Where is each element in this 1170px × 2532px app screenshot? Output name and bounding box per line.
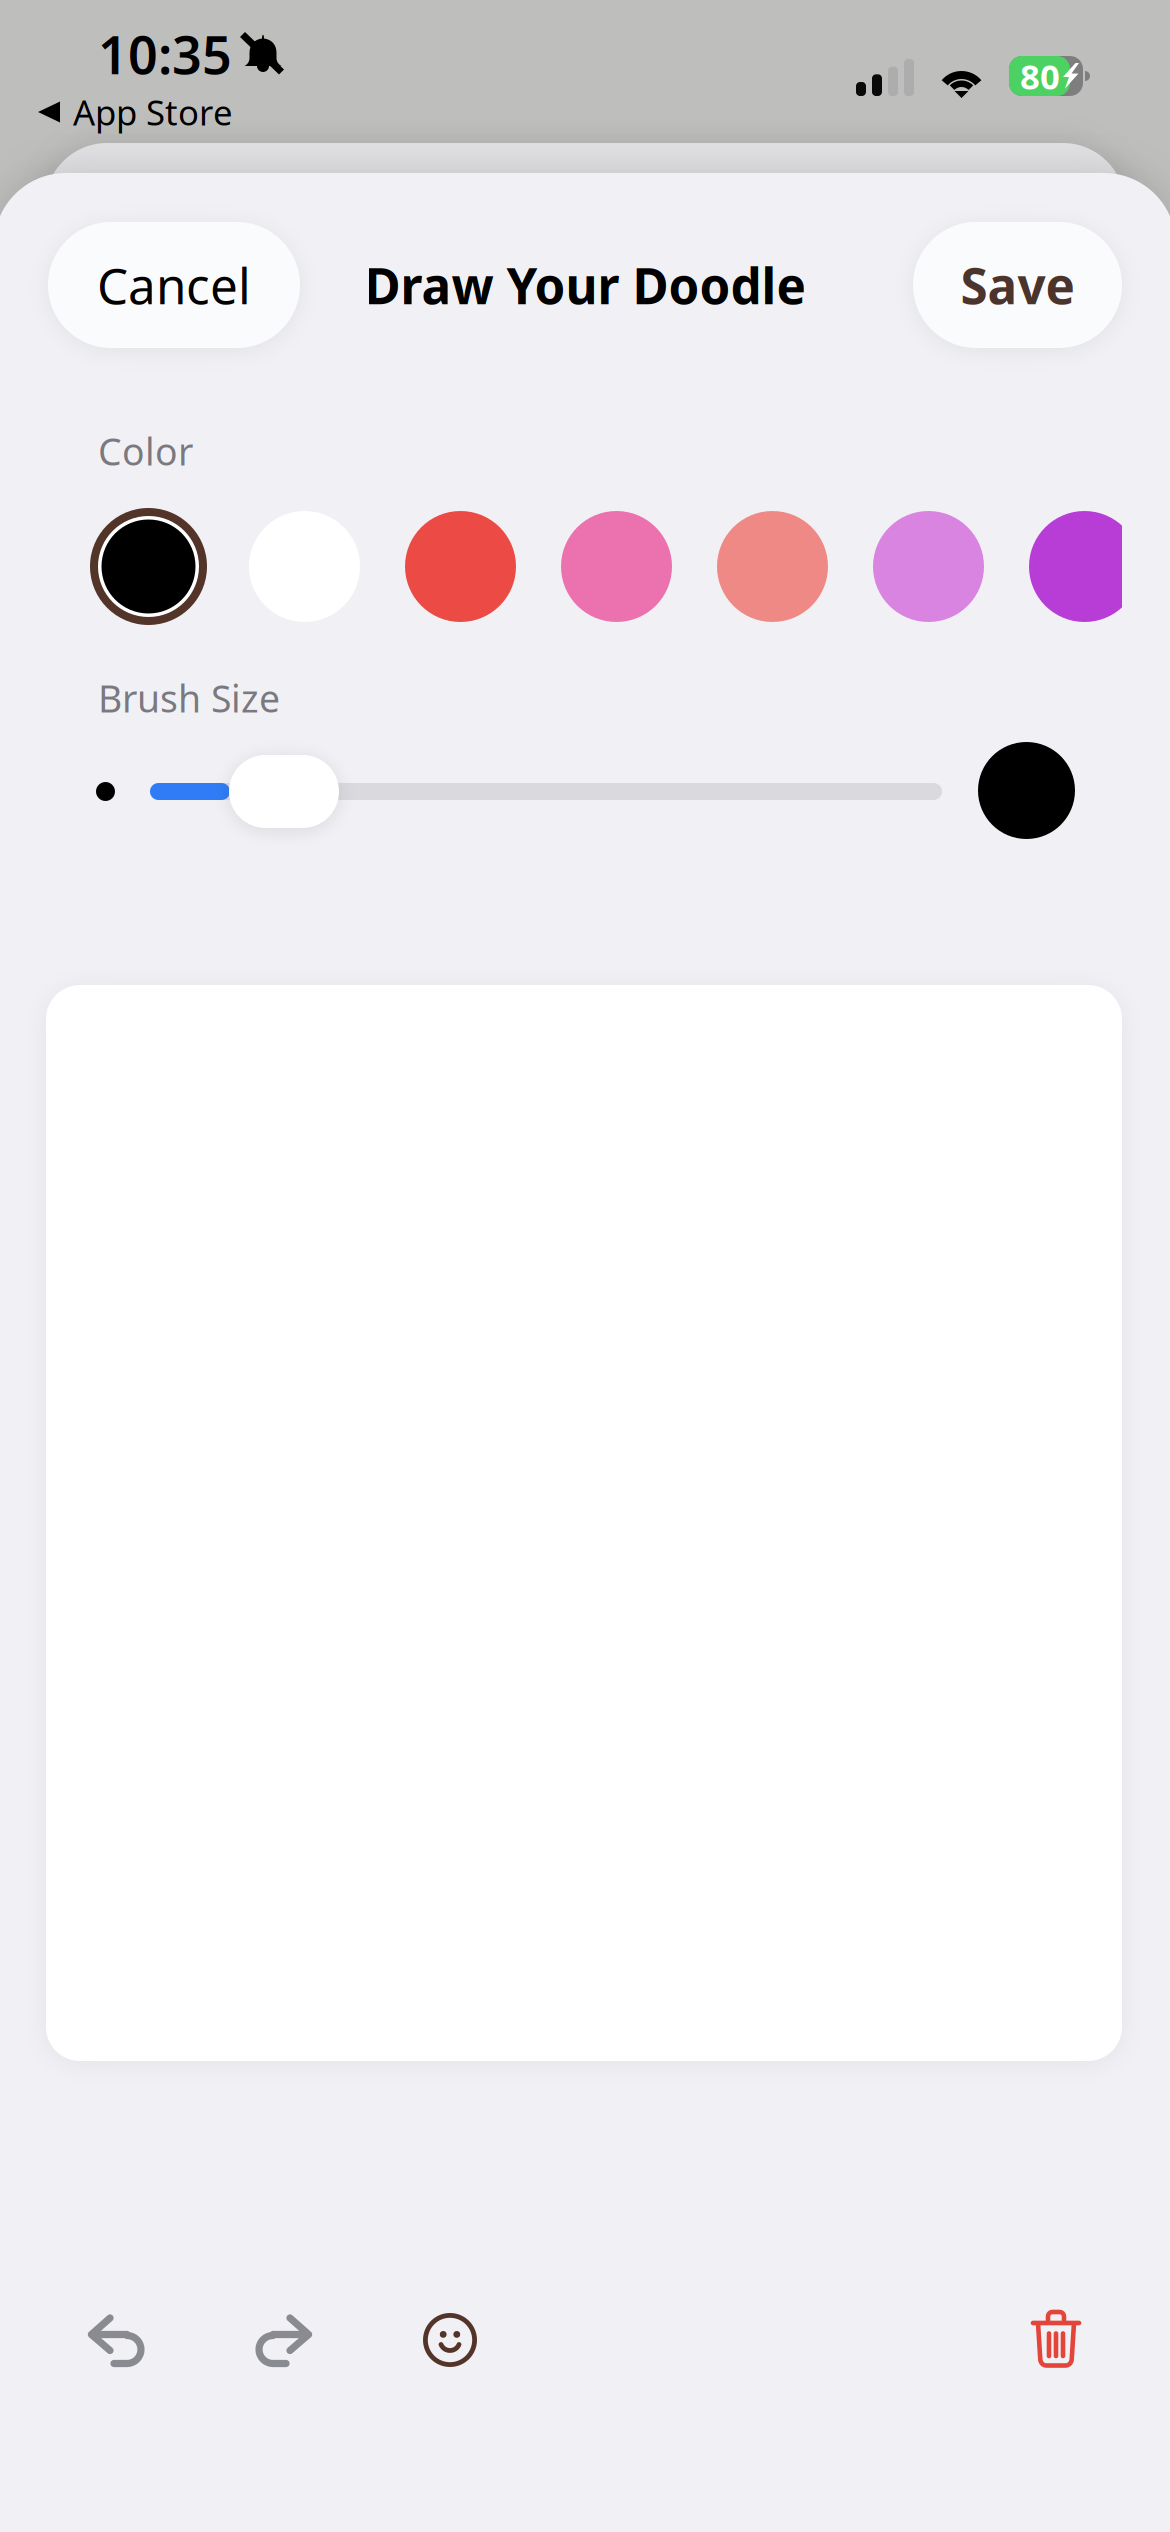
button[interactable]: Cancel xyxy=(48,222,300,348)
button[interactable]: Pick colour xyxy=(714,508,831,625)
button[interactable]: Pick colour xyxy=(90,508,207,625)
staticText: Draw Your Doodle xyxy=(364,252,805,318)
button[interactable]: Undo xyxy=(66,2298,162,2382)
button[interactable]: Clear canvas xyxy=(1008,2297,1104,2381)
button[interactable]: Pick colour xyxy=(1026,508,1143,625)
staticText: Cancel xyxy=(97,252,251,318)
button[interactable]: Redo xyxy=(241,2298,337,2382)
staticText: App Store xyxy=(73,89,233,135)
staticText: 10:35 xyxy=(98,19,232,89)
staticText: Save xyxy=(960,252,1074,318)
staticText: Color xyxy=(98,426,193,476)
button[interactable]: Save xyxy=(913,222,1122,348)
staticText: Brush Size xyxy=(98,673,280,723)
button[interactable]: Pick colour xyxy=(246,508,363,625)
staticText: 80 xyxy=(1020,53,1060,99)
button[interactable]: Pick colour xyxy=(558,508,675,625)
button[interactable]: Add sticker xyxy=(402,2298,498,2382)
button[interactable]: Pick colour xyxy=(870,508,987,625)
button[interactable]: Pick colour xyxy=(402,508,519,625)
